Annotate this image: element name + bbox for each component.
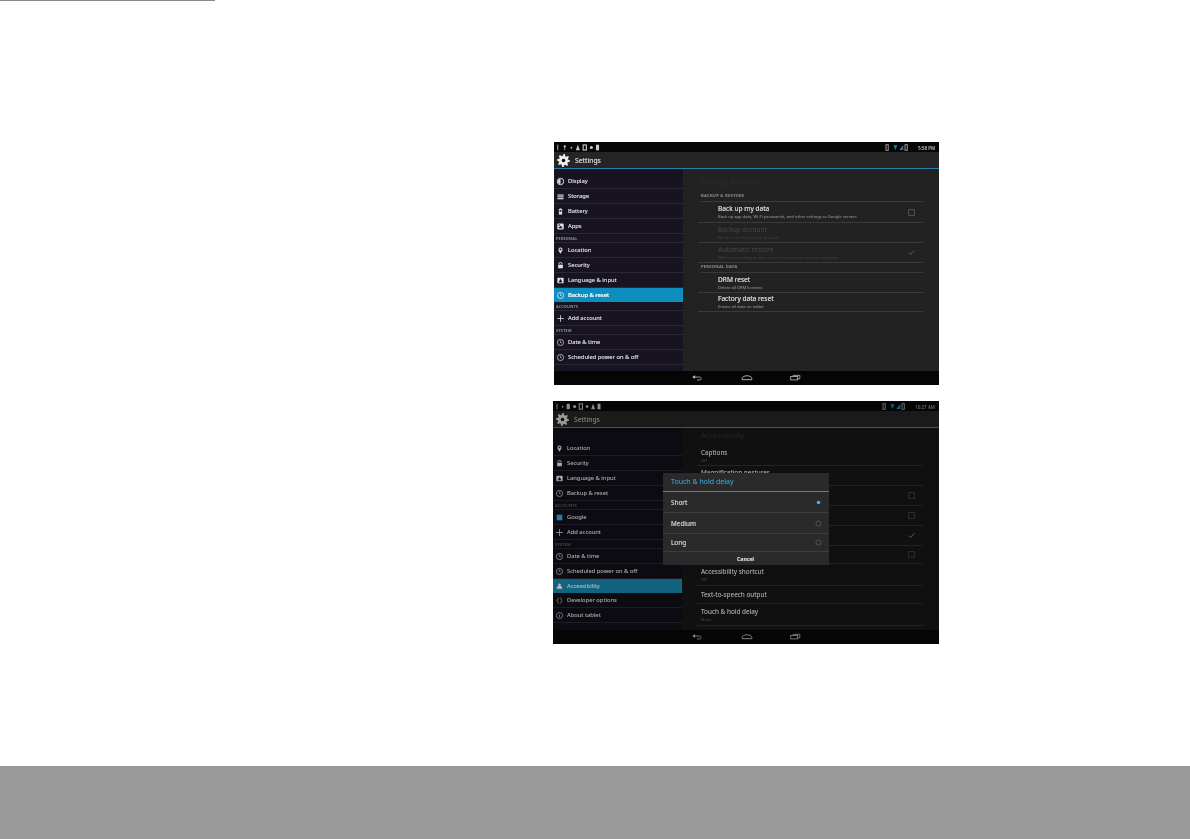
button[interactable]: DRM reset <box>683 273 939 293</box>
staticText: Developer options <box>567 596 617 604</box>
staticText: Add account <box>567 528 601 536</box>
staticText: Erases all data on tablet <box>718 304 764 310</box>
staticText: SYSTEM <box>555 542 571 547</box>
staticText: Auto-rotate screen <box>701 531 757 540</box>
button[interactable]: Backup & reset <box>553 486 682 500</box>
button[interactable]: Auto-rotate screen <box>682 526 939 546</box>
staticText: 10:27 AM <box>915 404 936 410</box>
staticText: Backup & reset <box>568 291 609 299</box>
button[interactable]: Google <box>553 510 682 524</box>
button[interactable]: Location <box>554 243 683 257</box>
button[interactable]: Factory data reset <box>683 293 939 312</box>
staticText: ACCOUNTS <box>555 503 578 508</box>
staticText: Security <box>568 261 590 269</box>
staticText: SYSTEM <box>556 328 572 333</box>
staticText: Backup & reset <box>567 489 608 497</box>
staticText: Add account <box>568 314 602 322</box>
staticText: Accessibility shortcut <box>701 567 764 576</box>
staticText: Display <box>568 177 588 185</box>
staticText: Back up app data, Wi-Fi passwords, and o… <box>718 214 857 220</box>
button[interactable]: Short <box>663 492 829 512</box>
button[interactable]: Date & time <box>553 549 682 563</box>
staticText: BACKUP & RESTORE <box>701 193 745 199</box>
button[interactable]: Long <box>663 534 829 551</box>
staticText: DRM reset <box>718 275 751 284</box>
button[interactable]: Security <box>554 258 683 272</box>
button[interactable]: Add account <box>553 525 682 539</box>
staticText: Settings <box>574 415 600 424</box>
button[interactable]: Backup & reset <box>554 288 683 302</box>
staticText: Need to set the backup account <box>718 235 779 241</box>
button[interactable]: Recent apps <box>790 631 802 643</box>
button[interactable]: Cancel <box>663 552 829 565</box>
staticText: When reinstalling an app, restore backed… <box>718 255 838 261</box>
staticText: Touch & hold delay <box>701 607 759 616</box>
staticText: 5:58 PM <box>918 145 936 151</box>
button[interactable]: Medium <box>663 513 829 533</box>
staticText: Text-to-speech output <box>701 590 767 599</box>
button[interactable]: Recent apps <box>790 372 802 384</box>
button[interactable]: Touch & hold delay <box>682 604 939 626</box>
button[interactable]: Text-to-speech output <box>682 586 939 604</box>
staticText: Location <box>567 444 591 452</box>
button[interactable]: Add account <box>554 311 683 325</box>
button[interactable]: Location <box>553 441 682 455</box>
staticText: Google <box>567 513 587 521</box>
button[interactable]: Accessibility <box>553 579 682 593</box>
staticText: Magnification gestures <box>701 468 770 477</box>
staticText: PERSONAL DATA <box>701 264 738 270</box>
button[interactable]: Scheduled power on & off <box>553 564 682 578</box>
button[interactable]: Captions <box>682 446 939 466</box>
button[interactable]: Power button ends call <box>682 506 939 526</box>
button[interactable]: Speak passwords <box>682 546 939 564</box>
staticText: Storage <box>568 192 590 200</box>
staticText: Large text <box>701 491 732 500</box>
button[interactable]: About tablet <box>553 608 682 622</box>
button[interactable]: Large text <box>682 486 939 506</box>
button[interactable]: Automatic restore <box>683 243 939 263</box>
button[interactable]: Date & time <box>554 335 683 349</box>
button[interactable]: Scheduled power on & off <box>554 350 683 364</box>
button[interactable]: Back up my data <box>683 202 939 223</box>
staticText: Back up my data <box>718 204 770 213</box>
staticText: Date & time <box>568 338 601 346</box>
button[interactable]: Home <box>741 631 753 643</box>
staticText: Off <box>701 478 707 483</box>
staticText: Scheduled power on & off <box>568 353 639 361</box>
staticText: Delete all DRM licenses <box>718 285 763 291</box>
button[interactable]: Display <box>554 174 683 188</box>
staticText: Settings <box>575 156 601 165</box>
staticText: About tablet <box>567 611 601 619</box>
button[interactable]: Security <box>553 456 682 470</box>
button[interactable]: Developer options <box>553 593 682 607</box>
staticText: Language & input <box>568 276 617 284</box>
staticText: Battery <box>568 207 588 215</box>
button[interactable]: Battery <box>554 204 683 218</box>
button[interactable]: Storage <box>554 189 683 203</box>
button[interactable]: Accessibility shortcut <box>682 564 939 586</box>
staticText: Security <box>567 459 589 467</box>
button[interactable]: Magnification gestures <box>682 466 939 486</box>
staticText: Factory data reset <box>718 294 774 303</box>
button[interactable]: Apps <box>554 219 683 233</box>
staticText: Language & input <box>567 474 616 482</box>
staticText: Power button ends call <box>701 511 770 520</box>
staticText: Long <box>671 538 815 547</box>
button[interactable]: Backup account <box>683 223 939 243</box>
staticText: Location <box>568 246 592 254</box>
staticText: Accessibility <box>701 430 744 440</box>
staticText: Cancel <box>737 555 755 562</box>
button[interactable]: Language & input <box>553 471 682 485</box>
staticText: Apps <box>568 222 582 230</box>
staticText: Short <box>701 617 712 622</box>
button[interactable]: Back <box>691 631 703 643</box>
button[interactable]: Back <box>691 372 703 384</box>
staticText: PERSONAL <box>556 236 578 241</box>
button[interactable]: Language & input <box>554 273 683 287</box>
staticText: Automatic restore <box>718 245 774 254</box>
staticText: Off <box>701 577 707 582</box>
staticText: Off <box>701 458 707 463</box>
button[interactable]: Home <box>741 372 753 384</box>
staticText: Scheduled power on & off <box>567 567 638 575</box>
